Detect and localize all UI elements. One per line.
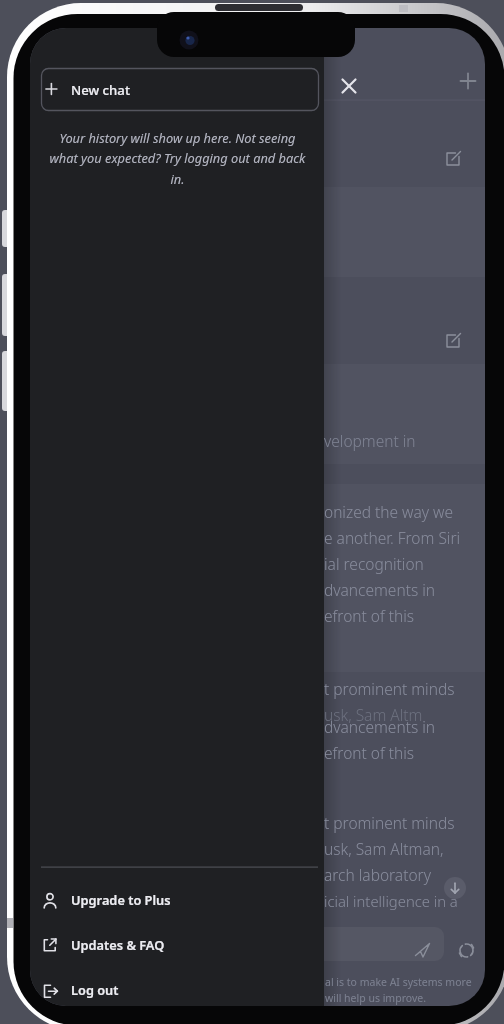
staticText: ial recognition <box>324 553 424 574</box>
staticText: icial intelligence in a <box>324 891 458 911</box>
staticText: New chat <box>71 81 130 99</box>
button[interactable] <box>444 877 466 899</box>
button[interactable] <box>310 927 444 961</box>
staticText: velopment in <box>324 430 416 451</box>
staticText: dvancements in <box>324 716 436 737</box>
staticText: Log out <box>71 981 119 998</box>
staticText: efront of this <box>324 742 415 763</box>
staticText: Updates & FAQ <box>71 936 165 953</box>
staticText: Upgrade to Plus <box>71 891 171 908</box>
button[interactable] <box>453 66 483 96</box>
staticText: e another. From Siri <box>324 527 461 548</box>
staticText: Your history will show up here. Not seei… <box>37 129 318 1024</box>
staticText: usk, Sam Altman, <box>324 838 444 859</box>
button[interactable] <box>38 884 320 919</box>
staticText: arch laboratory <box>324 864 431 885</box>
staticText: will help us improve. <box>325 991 426 1005</box>
staticText: usk, Sam Altm <box>324 704 423 725</box>
staticText: t prominent minds <box>324 812 455 833</box>
staticText: t prominent minds <box>324 678 455 699</box>
staticText: efront of this <box>324 605 415 626</box>
staticText: onized the way we <box>324 501 454 522</box>
staticText: al is to make AI systems more <box>325 975 472 989</box>
staticText: dvancements in <box>324 579 436 600</box>
button[interactable] <box>38 974 320 1009</box>
button[interactable] <box>334 71 364 101</box>
button[interactable] <box>41 68 319 111</box>
button[interactable] <box>38 928 320 963</box>
